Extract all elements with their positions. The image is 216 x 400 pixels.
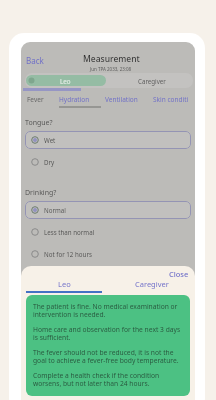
button[interactable]: Hydration [59, 95, 90, 104]
staticText: Close [169, 269, 189, 279]
button[interactable]: Less than normal [25, 223, 191, 241]
staticText: Leo [60, 77, 71, 85]
button[interactable]: Dry [25, 153, 191, 171]
button[interactable]: Wet [25, 131, 191, 149]
button[interactable]: Caregiver [110, 73, 193, 88]
staticText: Home care and observation for the next 3… [33, 325, 181, 342]
button[interactable]: Not for 12 hours [25, 245, 191, 263]
button[interactable]: Normal [25, 201, 191, 219]
staticText: Measurement [83, 53, 140, 65]
staticText: Jun TPA 2033, 23:08 [90, 66, 132, 72]
button[interactable]: Back [26, 55, 44, 66]
button[interactable]: Fever [27, 95, 44, 104]
staticText: Normal [44, 206, 66, 214]
button[interactable]: Close [165, 267, 193, 281]
staticText: Wet [44, 136, 56, 144]
staticText: Not for 12 hours [44, 250, 92, 258]
button[interactable]: Ventilation [105, 95, 138, 104]
staticText: Leo [58, 279, 71, 289]
staticText: The fever should not be reduced, it is n… [33, 348, 181, 365]
staticText: Less than normal [44, 228, 95, 236]
staticText: Caregiver [135, 279, 169, 289]
staticText: Tongue? [25, 118, 53, 128]
button[interactable]: Skin conditi [153, 95, 189, 104]
button[interactable]: Caregiver [108, 279, 195, 293]
button[interactable]: Leo [26, 75, 106, 86]
button[interactable]: Leo [21, 279, 108, 293]
staticText: Caregiver [138, 77, 166, 85]
staticText: Drinking? [25, 188, 57, 198]
staticText: Dry [44, 158, 55, 166]
staticText: The patient is fine. No medical examinat… [33, 302, 181, 319]
staticText: Complete a health check if the condition… [33, 371, 181, 388]
